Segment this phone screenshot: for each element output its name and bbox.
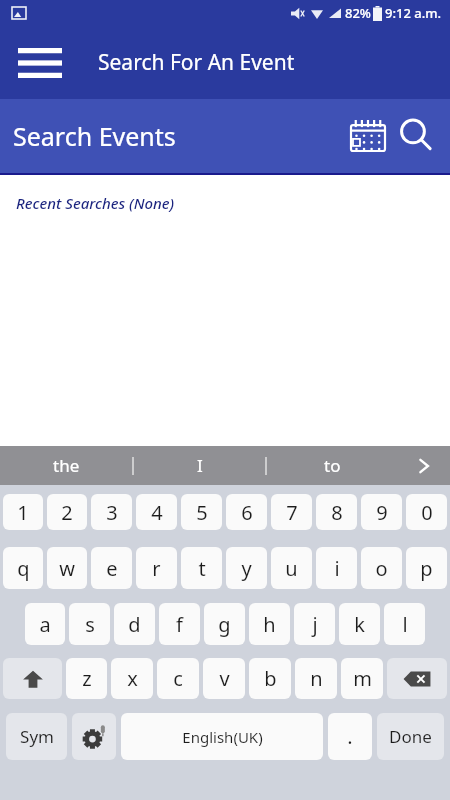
button[interactable]: Backspace (387, 658, 447, 699)
button[interactable]: h (249, 603, 290, 645)
staticText: u (285, 555, 298, 582)
staticText: x (127, 665, 138, 692)
staticText: w (59, 555, 75, 582)
staticText: g (218, 611, 231, 638)
button[interactable]: I (134, 446, 265, 485)
button[interactable]: d (114, 603, 155, 645)
button[interactable]: x (111, 658, 153, 699)
button[interactable]: t (181, 547, 222, 589)
button[interactable]: 8 (316, 494, 357, 530)
button[interactable]: c (157, 658, 199, 699)
staticText: p (420, 555, 433, 582)
staticText: 8 (331, 499, 343, 526)
staticText: o (375, 555, 388, 582)
button[interactable]: 1 (3, 494, 43, 530)
staticText: 9 (376, 499, 388, 526)
staticText: k (354, 611, 365, 638)
staticText: to (324, 454, 341, 477)
button[interactable]: 5 (181, 494, 222, 530)
button[interactable]: r (136, 547, 177, 589)
staticText: Sym (20, 725, 54, 748)
button[interactable]: j (294, 603, 335, 645)
button[interactable]: p (406, 547, 447, 589)
button[interactable]: the (0, 446, 132, 485)
staticText: 2 (61, 499, 73, 526)
button[interactable]: f (159, 603, 200, 645)
button[interactable]: y (226, 547, 267, 589)
staticText: 1 (17, 499, 29, 526)
button[interactable]: w (47, 547, 87, 589)
button[interactable]: m (341, 658, 383, 699)
button[interactable]: i (316, 547, 357, 589)
staticText: 82% (345, 4, 371, 22)
button[interactable]: Sym (6, 713, 67, 760)
staticText: 0 (421, 499, 433, 526)
button[interactable]: Search (392, 112, 440, 160)
staticText: 7 (286, 499, 298, 526)
button[interactable]: a (25, 603, 65, 645)
staticText: I (197, 454, 203, 477)
staticText: r (152, 555, 161, 582)
staticText: a (39, 611, 51, 638)
staticText: t (198, 555, 206, 582)
button[interactable]: o (361, 547, 402, 589)
staticText: Done (389, 725, 432, 748)
staticText: e (106, 555, 118, 582)
staticText: j (312, 611, 318, 638)
button[interactable]: b (249, 658, 291, 699)
button[interactable]: g (204, 603, 245, 645)
staticText: the (53, 454, 80, 477)
staticText: 9:12 a.m. (385, 4, 442, 22)
staticText: i (334, 555, 340, 582)
button[interactable]: Shift (3, 658, 62, 699)
button[interactable]: More suggestions (398, 446, 450, 485)
button[interactable]: 0 (406, 494, 447, 530)
button[interactable]: s (69, 603, 110, 645)
staticText: Search For An Event (98, 48, 295, 77)
button[interactable]: l (384, 603, 425, 645)
button[interactable]: Pick date (344, 112, 392, 160)
staticText: v (219, 665, 230, 692)
staticText: f (176, 611, 183, 638)
button[interactable]: English(UK) (121, 713, 323, 760)
staticText: 5 (196, 499, 208, 526)
button[interactable]: 3 (91, 494, 132, 530)
button[interactable]: Keyboard settings (72, 713, 116, 760)
staticText: 4 (151, 499, 163, 526)
button[interactable]: v (203, 658, 245, 699)
staticText: d (128, 611, 141, 638)
button[interactable]: . (328, 713, 372, 760)
staticText: . (347, 723, 353, 750)
staticText: English(UK) (182, 727, 263, 747)
staticText: Search Events (13, 119, 176, 153)
button[interactable]: 4 (136, 494, 177, 530)
staticText: s (85, 611, 95, 638)
staticText: n (310, 665, 323, 692)
button[interactable]: q (3, 547, 43, 589)
staticText: q (17, 555, 30, 582)
button[interactable]: Open navigation menu (8, 31, 72, 95)
staticText: m (353, 665, 372, 692)
button[interactable]: 9 (361, 494, 402, 530)
button[interactable]: u (271, 547, 312, 589)
button[interactable]: e (91, 547, 132, 589)
button[interactable]: z (66, 658, 107, 699)
staticText: c (173, 665, 183, 692)
button[interactable]: 7 (271, 494, 312, 530)
button[interactable]: 2 (47, 494, 87, 530)
staticText: 6 (241, 499, 253, 526)
staticText: b (264, 665, 277, 692)
button[interactable]: n (295, 658, 337, 699)
button[interactable]: to (267, 446, 398, 485)
button[interactable]: Done (377, 713, 444, 760)
button[interactable]: 6 (226, 494, 267, 530)
staticText: Recent Searches (None) (16, 193, 175, 213)
staticText: y (241, 555, 252, 582)
staticText: l (402, 611, 408, 638)
staticText: 3 (106, 499, 118, 526)
button[interactable]: k (339, 603, 380, 645)
staticText: z (82, 665, 92, 692)
staticText: h (263, 611, 276, 638)
